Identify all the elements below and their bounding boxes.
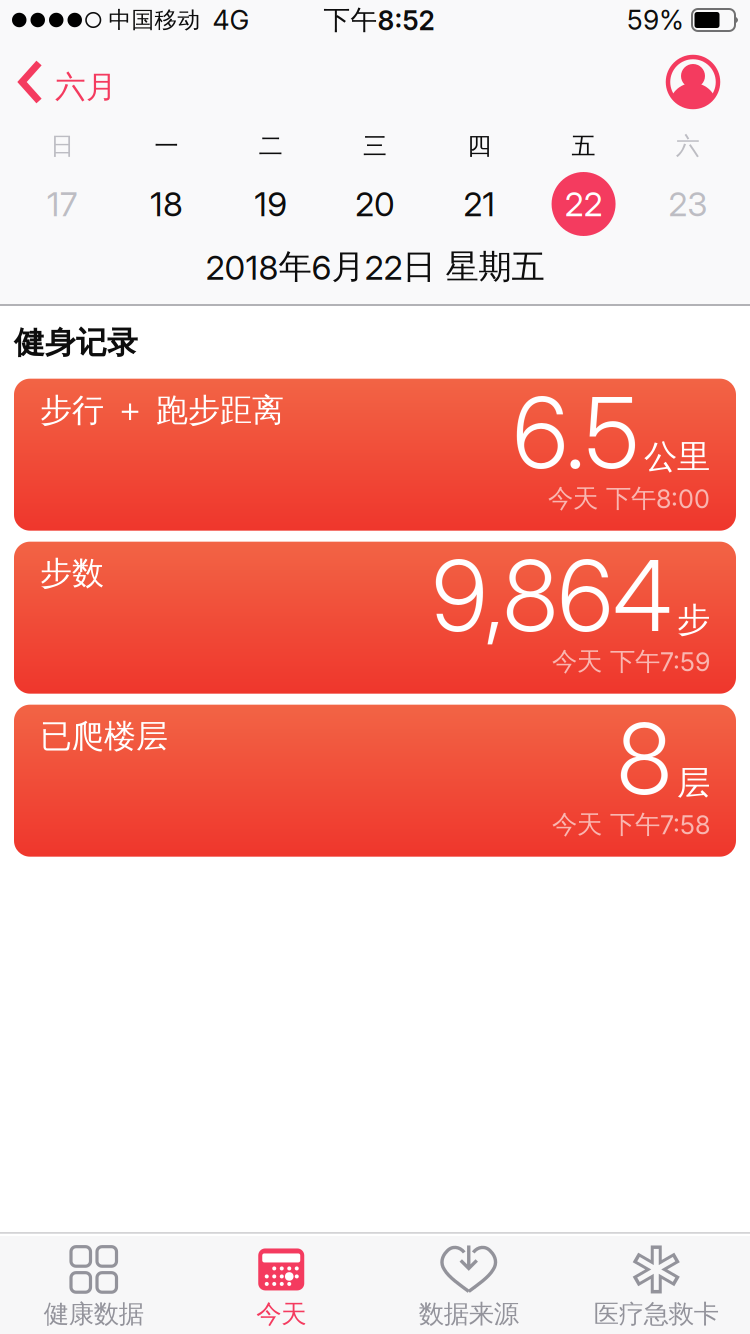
staticText: 健康数据 [44,1298,144,1329]
button[interactable]: 步行 ＋ 跑步距离 [14,379,736,531]
staticText: 下午8:52 [323,3,434,37]
staticText: 23 [668,184,707,224]
staticText: 公里 [644,436,710,477]
staticText: 59% [627,4,684,36]
staticText: 四 [467,131,491,161]
staticText: 日 [50,131,74,161]
button[interactable]: 17 [10,168,114,240]
staticText: 20 [355,184,395,224]
button[interactable]: 22 [531,168,636,240]
staticText: 一 [154,131,178,161]
staticText: 二 [259,131,283,161]
staticText: 18 [150,184,183,224]
button[interactable]: 21 [427,168,531,240]
staticText: 五 [572,131,596,161]
button[interactable]: 20 [323,168,427,240]
staticText: 2018年6月22日 星期五 [205,246,544,288]
button[interactable]: 健康数据 [0,1244,187,1329]
button[interactable]: 已爬楼层 [14,705,736,857]
button[interactable]: 六月 [0,60,117,104]
button[interactable]: 19 [219,168,323,240]
staticText: 三 [363,131,387,161]
staticText: 步数 [40,554,104,593]
staticText: 步 [677,599,710,640]
button[interactable]: 23 [636,168,740,240]
staticText: 22 [565,184,603,224]
button[interactable]: 医疗急救卡 [562,1244,750,1329]
staticText: 中国移动 [108,6,200,34]
staticText: 6.5 [513,374,639,491]
staticText: 21 [463,184,495,224]
button[interactable]: 18 [114,168,219,240]
staticText: 六月 [55,68,117,106]
staticText: 步行 ＋ 跑步距离 [40,391,284,430]
staticText: 4G [212,4,249,36]
staticText: 六 [676,131,700,161]
staticText: 19 [254,184,287,224]
staticText: 9,864 [432,537,672,654]
staticText: 今天 下午7:59 [552,646,710,678]
staticText: 层 [677,762,710,803]
staticText: 健身记录 [14,324,138,362]
staticText: 数据来源 [419,1298,519,1329]
staticText: 17 [47,184,78,224]
button[interactable]: 个人资料 [668,57,750,107]
staticText: 医疗急救卡 [594,1298,719,1329]
staticText: 已爬楼层 [40,717,168,756]
staticText: 今天 [256,1298,306,1329]
staticText: 8 [617,700,672,817]
staticText: 今天 下午7:58 [552,809,710,841]
button[interactable]: 今天 [187,1244,375,1329]
button[interactable]: 步数 [14,542,736,694]
button[interactable]: 数据来源 [375,1244,562,1329]
staticText: 今天 下午8:00 [548,483,710,515]
